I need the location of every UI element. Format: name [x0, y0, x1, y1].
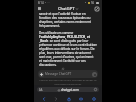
staticText: ChatGPT peut faire des erreurs. Envisage… — [34, 79, 102, 85]
button[interactable]: Add attachment — [39, 72, 44, 77]
staticText: _Booh — [39, 39, 49, 43]
button[interactable]: Copy — [61, 67, 64, 70]
staticText: 56 — [91, 1, 95, 5]
staticText: se sont distingués par leur — [49, 39, 89, 43]
button[interactable]: ChatGPT — [58, 6, 78, 11]
staticText: Message ChatGPT — [45, 72, 72, 76]
staticText: ⋯ — [47, 1, 50, 4]
staticText: 8:14 — [38, 1, 44, 5]
button[interactable]: Add attachment — [38, 70, 98, 78]
button[interactable]: Back — [40, 95, 47, 102]
staticText: FoolishlyAnyhow, PKU-GLITCH, et — [39, 35, 91, 39]
button[interactable]: Share — [65, 95, 72, 102]
button[interactable]: Tabs — [90, 95, 97, 102]
staticText: ▴ — [85, 1, 87, 4]
staticText: Des utilisateurs comme — [39, 31, 74, 35]
staticText: ChatGPT — [58, 6, 75, 11]
staticText: chatgpt.com — [61, 88, 79, 92]
button[interactable]: AA — [37, 87, 99, 92]
staticText: savoir et que l'activité fluctue en fonc… — [39, 12, 91, 28]
button[interactable]: Menu — [37, 6, 42, 11]
button[interactable]: New chat — [94, 6, 99, 11]
button[interactable]: Bookmarks — [77, 95, 84, 102]
button[interactable]: Forward — [52, 95, 59, 102]
button[interactable]: Voice mode — [92, 72, 97, 77]
staticText: présence continue et leurs contributions… — [39, 43, 97, 67]
staticText: AA — [39, 88, 43, 92]
